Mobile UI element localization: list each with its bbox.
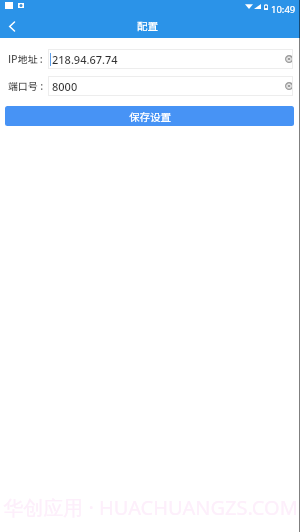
staticText: 端口号 : — [8, 78, 44, 92]
button[interactable]: 8000 — [48, 76, 293, 96]
button[interactable]: Clear — [285, 55, 293, 63]
button[interactable]: Back — [0, 16, 23, 38]
staticText: 10:49 — [271, 3, 296, 15]
staticText: 华创应用 · HUACHUANGZS.COM — [3, 494, 298, 521]
button[interactable]: 保存设置 — [5, 106, 294, 126]
button[interactable]: Clear — [285, 82, 293, 90]
staticText: 配置 — [137, 18, 158, 33]
staticText: 保存设置 — [129, 109, 171, 124]
staticText: 218.94.67.74 — [52, 52, 118, 67]
button[interactable]: 218.94.67.74 — [48, 49, 293, 69]
staticText: IP地址 : — [8, 51, 43, 65]
staticText: 8000 — [52, 79, 78, 94]
